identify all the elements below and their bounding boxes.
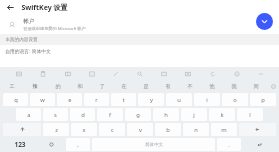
staticText: 是 bbox=[143, 83, 149, 90]
staticText: c bbox=[111, 126, 114, 134]
button[interactable]: Space bbox=[92, 138, 215, 151]
staticText: 简体中文 bbox=[145, 142, 163, 148]
staticText: 有 bbox=[165, 83, 171, 90]
button[interactable]: 不 bbox=[179, 80, 201, 92]
staticText: t bbox=[122, 96, 125, 104]
staticText: 了 bbox=[99, 83, 105, 90]
staticText: q bbox=[14, 96, 18, 104]
button[interactable]: t bbox=[111, 93, 136, 106]
staticText: n bbox=[194, 126, 198, 134]
button[interactable]: 在 bbox=[113, 80, 135, 92]
button[interactable]: Enter bbox=[243, 138, 276, 151]
staticText: 丰富的内容设置 bbox=[5, 37, 38, 43]
button[interactable]: e bbox=[57, 93, 82, 106]
button[interactable]: Backspace bbox=[239, 123, 276, 136]
button[interactable]: j bbox=[181, 108, 207, 121]
button[interactable]: 他 bbox=[201, 80, 223, 92]
button[interactable]: Toolbar item 6 bbox=[134, 68, 145, 79]
staticText: z bbox=[55, 126, 58, 134]
button[interactable]: y bbox=[138, 93, 164, 106]
staticText: j bbox=[193, 111, 195, 119]
button[interactable]: s bbox=[43, 108, 68, 121]
staticText: f bbox=[109, 111, 111, 119]
button[interactable]: 了 bbox=[91, 80, 113, 92]
button[interactable]: Emoji bbox=[38, 138, 64, 151]
button[interactable]: 123 bbox=[3, 138, 36, 151]
staticText: h bbox=[164, 111, 168, 119]
button[interactable]: u bbox=[166, 93, 192, 106]
button[interactable]: b bbox=[155, 123, 181, 136]
button[interactable]: Toolbar item 7 bbox=[158, 68, 169, 79]
button[interactable]: 同 bbox=[245, 80, 267, 92]
button[interactable]: , bbox=[66, 138, 90, 151]
button[interactable]: w bbox=[30, 93, 55, 106]
button[interactable]: z bbox=[43, 123, 69, 136]
staticText: 不 bbox=[187, 83, 193, 90]
button[interactable]: o bbox=[222, 93, 248, 106]
staticText: u bbox=[177, 96, 181, 104]
staticText: s bbox=[54, 111, 57, 119]
button[interactable]: x bbox=[71, 123, 97, 136]
button[interactable]: Expand suggestions bbox=[267, 80, 279, 92]
staticText: 辣 bbox=[32, 83, 38, 90]
button[interactable]: 帐户 bbox=[0, 15, 279, 34]
button[interactable]: f bbox=[97, 108, 123, 121]
button[interactable]: v bbox=[127, 123, 153, 136]
button[interactable]: 和 bbox=[69, 80, 91, 92]
button[interactable]: 辣 bbox=[23, 80, 46, 92]
button[interactable]: l bbox=[237, 108, 263, 121]
staticText: x bbox=[82, 126, 86, 134]
staticText: 我 bbox=[231, 83, 237, 90]
staticText: e bbox=[68, 96, 72, 104]
staticText: a bbox=[27, 111, 31, 119]
button[interactable]: Toolbar item 10 bbox=[231, 68, 242, 79]
button[interactable]: Shift bbox=[3, 123, 41, 136]
staticText: 工 bbox=[9, 83, 15, 90]
button[interactable]: Toolbar item 5 bbox=[110, 68, 121, 79]
staticText: d bbox=[81, 111, 85, 119]
button[interactable]: Back bbox=[5, 2, 16, 13]
button[interactable]: 自用的语言: 简体中文 bbox=[0, 45, 279, 58]
button[interactable]: i bbox=[194, 93, 220, 106]
button[interactable]: d bbox=[70, 108, 95, 121]
button[interactable]: 工 bbox=[0, 80, 23, 92]
staticText: 123 bbox=[14, 140, 26, 149]
staticText: g bbox=[136, 111, 140, 119]
button[interactable]: n bbox=[183, 123, 209, 136]
button[interactable]: q bbox=[3, 93, 28, 106]
button[interactable]: m bbox=[211, 123, 237, 136]
staticText: 登录或创建免费的 Microsoft 帐户 bbox=[23, 26, 86, 32]
button[interactable]: Expand bbox=[256, 13, 273, 30]
staticText: 同 bbox=[253, 83, 259, 90]
button[interactable]: g bbox=[125, 108, 151, 121]
staticText: p bbox=[261, 96, 265, 104]
button[interactable]: 我 bbox=[223, 80, 245, 92]
button[interactable]: Toolbar item 11 bbox=[255, 68, 266, 79]
staticText: b bbox=[166, 126, 170, 134]
staticText: y bbox=[150, 96, 153, 104]
staticText: i bbox=[206, 96, 208, 104]
staticText: 他 bbox=[209, 83, 215, 90]
button[interactable]: h bbox=[153, 108, 179, 121]
staticText: k bbox=[220, 111, 224, 119]
staticText: 在 bbox=[121, 83, 127, 90]
button[interactable]: 是 bbox=[135, 80, 157, 92]
button[interactable]: 有 bbox=[157, 80, 179, 92]
button[interactable]: Toolbar item 9 bbox=[207, 68, 218, 79]
staticText: 自用的语言: 简体中文 bbox=[5, 48, 51, 55]
button[interactable]: r bbox=[84, 93, 109, 106]
staticText: o bbox=[233, 96, 237, 104]
button[interactable]: c bbox=[99, 123, 125, 136]
button[interactable]: Toolbar item 2 bbox=[37, 68, 48, 79]
button[interactable]: k bbox=[209, 108, 235, 121]
button[interactable]: Toolbar item 3 bbox=[62, 68, 73, 79]
button[interactable]: a bbox=[16, 108, 41, 121]
staticText: m bbox=[221, 126, 227, 134]
button[interactable]: p bbox=[250, 93, 276, 106]
button[interactable]: 的 bbox=[46, 80, 69, 92]
button[interactable]: Toolbar item 4 bbox=[86, 68, 97, 79]
button[interactable]: Toolbar item 1 bbox=[13, 68, 24, 79]
staticText: , bbox=[77, 141, 79, 149]
button[interactable]: Toolbar item 8 bbox=[182, 68, 193, 79]
